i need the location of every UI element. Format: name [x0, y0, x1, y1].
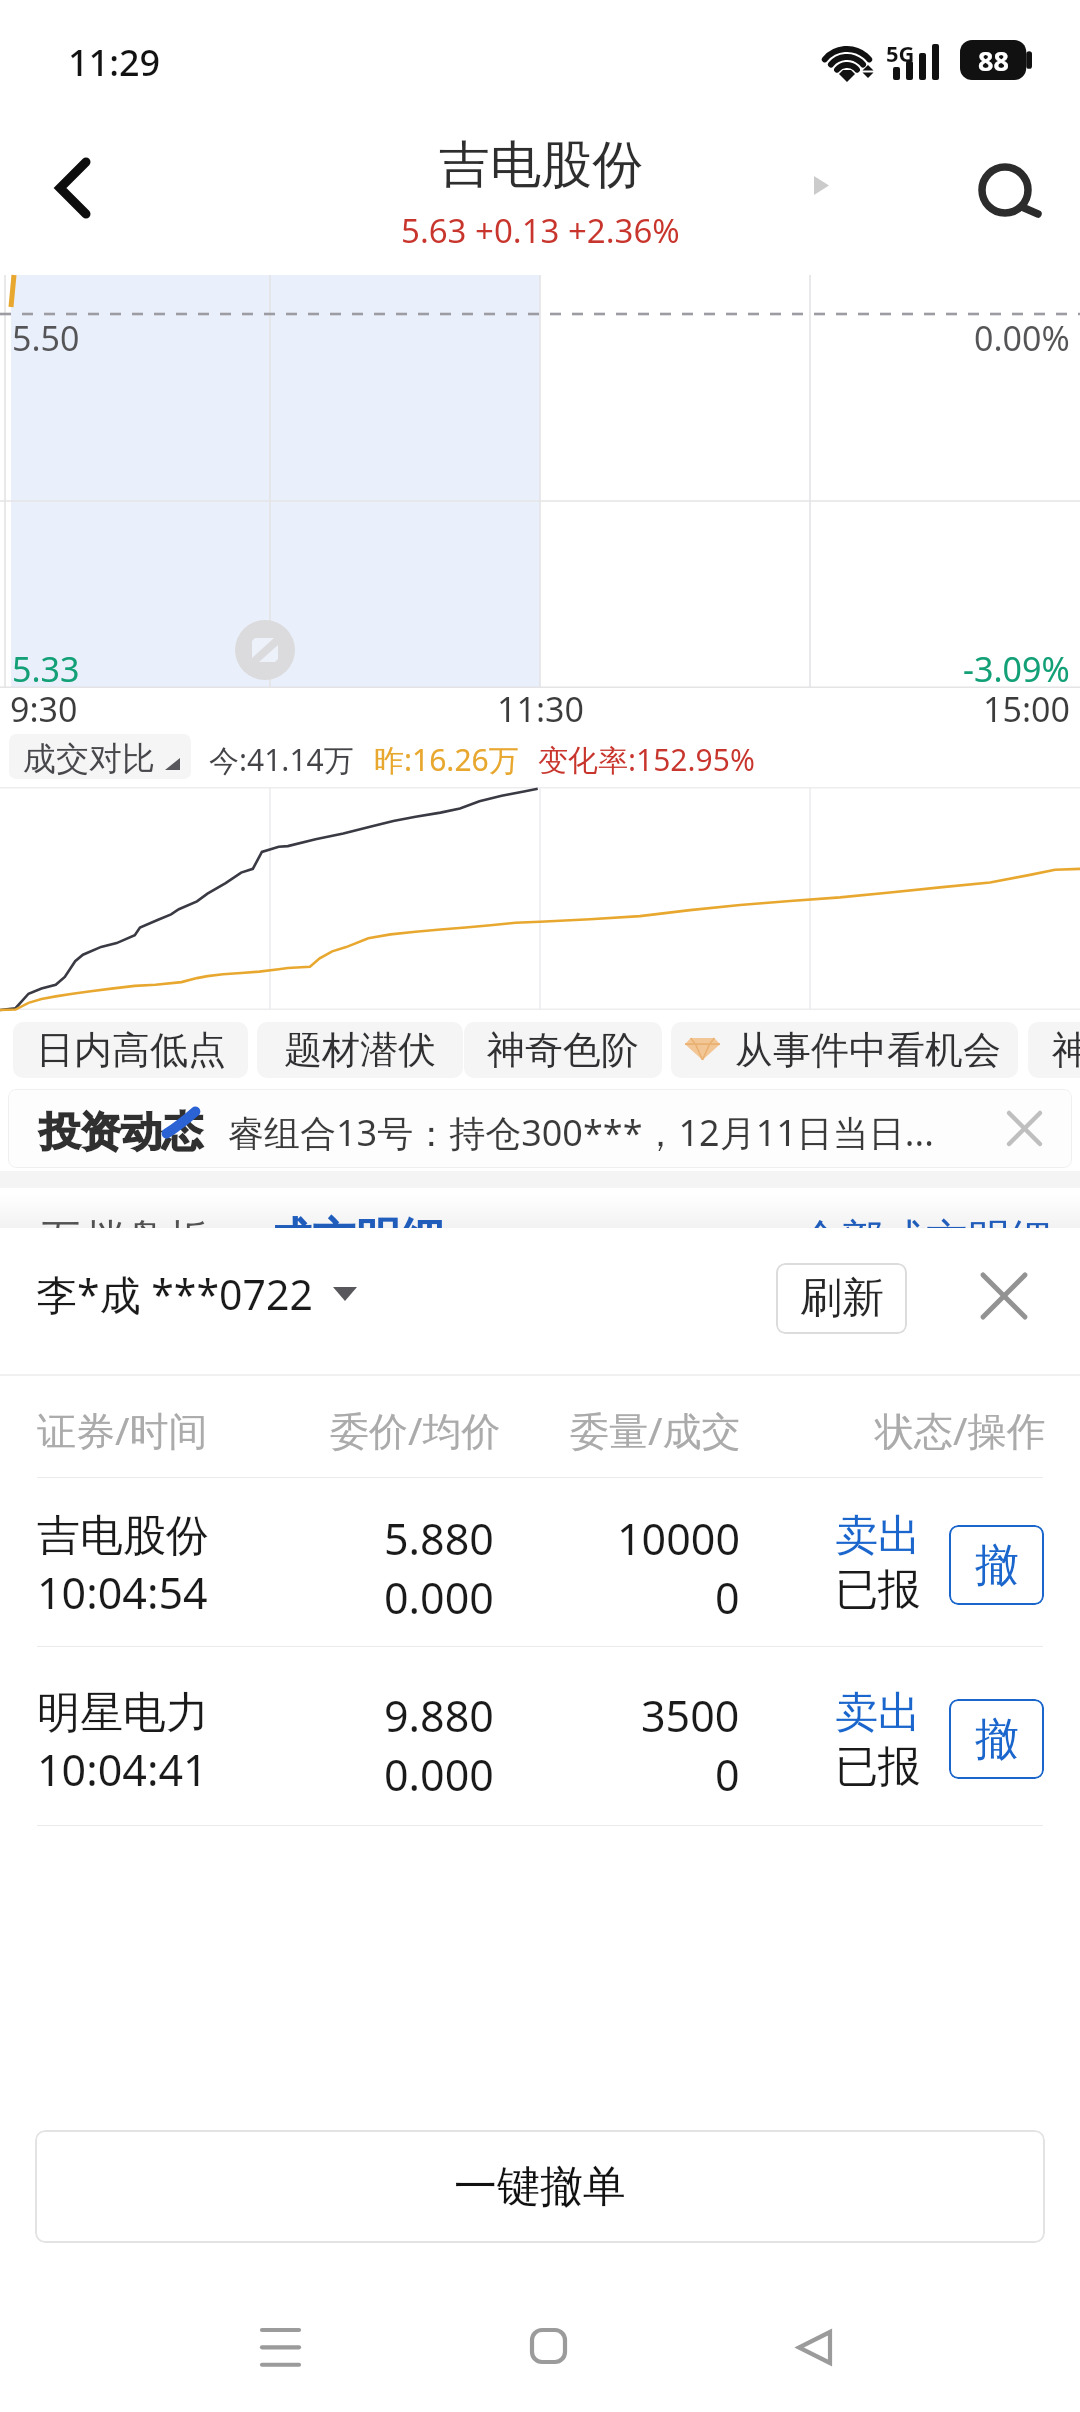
button[interactable]: 成交对比: [9, 734, 191, 779]
button[interactable]: 李*成 ***0722: [20, 1254, 373, 1334]
button[interactable]: 神奇色阶: [1028, 1022, 1080, 1078]
staticText: 0.000: [384, 1745, 494, 1804]
staticText: 神奇色阶: [487, 1026, 639, 1074]
staticText: 委量/成交: [570, 1403, 741, 1456]
staticText: 15:00: [983, 686, 1070, 732]
button[interactable]: Recent apps: [220, 2286, 340, 2406]
button[interactable]: 吉电股份: [0, 1477, 1080, 1646]
button[interactable]: Back: [754, 2287, 874, 2407]
staticText: 10:04:54: [37, 1563, 208, 1622]
button[interactable]: Search: [930, 120, 1080, 260]
staticText: 变化率:152.95%: [538, 739, 755, 780]
staticText: 10:04:41: [37, 1740, 208, 1799]
staticText: 11:29: [68, 38, 161, 87]
staticText: 题材潜伏: [284, 1026, 436, 1074]
staticText: 昨:16.26万: [374, 739, 519, 780]
staticText: 5.63 +0.13 +2.36%: [401, 208, 680, 253]
staticText: 卖出: [835, 1686, 921, 1740]
staticText: 成交对比: [23, 738, 155, 779]
button[interactable]: Home: [488, 2286, 608, 2406]
staticText: 9:30: [10, 686, 78, 732]
staticText: 明星电力: [37, 1686, 209, 1740]
staticText: 卖出: [835, 1509, 921, 1563]
staticText: 0: [715, 1568, 740, 1627]
staticText: 李*成 ***0722: [36, 1266, 313, 1322]
staticText: 撤: [975, 1712, 1019, 1767]
staticText: 88: [978, 42, 1009, 79]
staticText: 5G: [886, 38, 915, 68]
button[interactable]: Close: [959, 1251, 1049, 1341]
staticText: 一键撤单: [454, 2160, 626, 2214]
staticText: 睿组合13号：持仓300***，12月11日当日...: [228, 1108, 934, 1157]
staticText: 9.880: [384, 1686, 494, 1745]
staticText: 3500: [641, 1686, 740, 1745]
button[interactable]: 撤: [949, 1699, 1044, 1779]
staticText: 5.33: [12, 646, 80, 692]
button[interactable]: 神奇色阶: [464, 1022, 662, 1078]
staticText: 神奇色阶: [1052, 1026, 1080, 1074]
staticText: 刷新: [800, 1272, 884, 1325]
staticText: 吉电股份: [439, 133, 643, 197]
button[interactable]: 明星电力: [0, 1646, 1080, 1825]
staticText: 日内高低点: [36, 1026, 226, 1074]
button[interactable]: 从事件中看机会: [671, 1022, 1018, 1078]
staticText: 0.00%: [974, 315, 1070, 361]
button[interactable]: 刷新: [776, 1263, 907, 1334]
staticText: 证券/时间: [37, 1403, 208, 1456]
staticText: 10000: [617, 1509, 740, 1568]
button[interactable]: Back: [0, 118, 150, 258]
staticText: 11:30: [497, 686, 584, 732]
button[interactable]: 投资动态: [8, 1089, 1072, 1168]
staticText: 5.880: [384, 1509, 494, 1568]
staticText: 状态/操作: [875, 1403, 1046, 1456]
staticText: 五档盘析: [40, 1214, 208, 1267]
staticText: 5.50: [12, 315, 80, 361]
staticText: 已报: [835, 1740, 921, 1794]
staticText: 0.000: [384, 1568, 494, 1627]
staticText: 撤: [975, 1538, 1019, 1593]
button[interactable]: 一键撤单: [35, 2130, 1045, 2243]
staticText: 全部成交明细: [800, 1214, 1052, 1267]
staticText: 吉电股份: [37, 1509, 209, 1563]
button[interactable]: Close banner: [976, 1089, 1072, 1168]
staticText: 成交明细: [268, 1212, 444, 1267]
button[interactable]: 日内高低点: [13, 1022, 248, 1078]
button[interactable]: 题材潜伏: [257, 1022, 463, 1078]
staticText: 今:41.14万: [209, 739, 354, 780]
staticText: 委价/均价: [330, 1403, 501, 1456]
staticText: 从事件中看机会: [735, 1026, 1001, 1074]
button[interactable]: 撤: [949, 1525, 1044, 1605]
staticText: 0: [715, 1745, 740, 1804]
staticText: -3.09%: [963, 646, 1070, 692]
staticText: 已报: [835, 1563, 921, 1617]
staticText: 投资动态: [39, 1107, 203, 1159]
